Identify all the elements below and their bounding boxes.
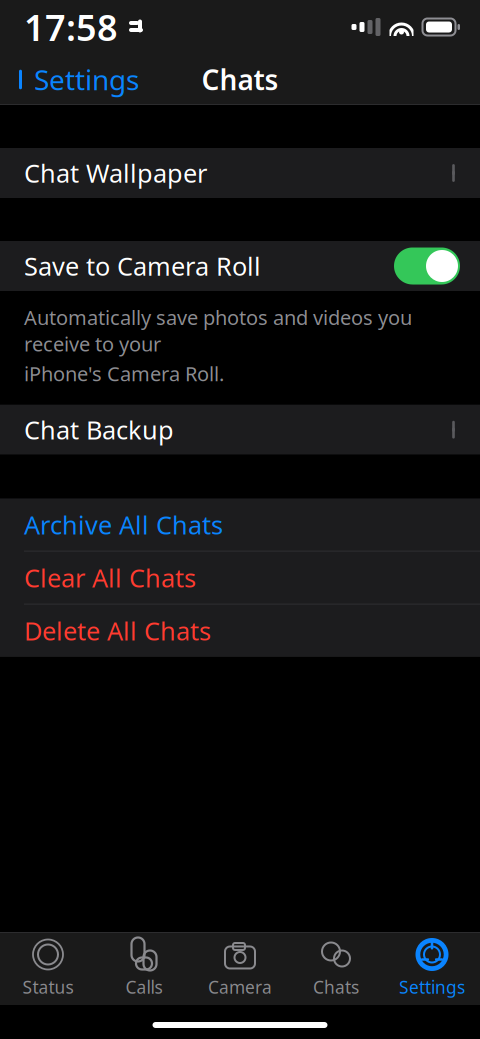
staticText: Camera — [208, 975, 272, 998]
staticText: Automatically save photos and videos you… — [24, 304, 412, 357]
staticText: iPhone's Camera Roll. — [24, 360, 224, 387]
button[interactable]: Chat Wallpaper — [0, 148, 480, 198]
staticText: Chats — [313, 975, 359, 998]
staticText: Calls — [125, 975, 162, 998]
staticText: Chats — [201, 61, 278, 98]
button[interactable]: Settings — [0, 52, 149, 107]
staticText: Chat Backup — [24, 413, 174, 446]
staticText: Settings — [399, 975, 465, 998]
button[interactable]: Chats — [288, 932, 384, 1005]
staticText: Save to Camera Roll — [24, 249, 261, 283]
staticText: 17:58 — [24, 3, 118, 51]
button[interactable]: Camera — [192, 932, 288, 1005]
button[interactable]: Delete All Chats — [0, 605, 480, 657]
staticText: Chat Wallpaper — [24, 156, 207, 190]
button[interactable]: Save to Camera Roll — [394, 247, 460, 284]
staticText: Archive All Chats — [24, 508, 223, 541]
button[interactable]: Chat Backup — [0, 405, 480, 455]
button[interactable]: Settings — [384, 932, 480, 1005]
button[interactable]: Calls — [96, 932, 192, 1005]
staticText: Settings — [34, 61, 139, 98]
button[interactable]: Status — [0, 932, 96, 1005]
staticText: Delete All Chats — [24, 614, 211, 647]
staticText: Status — [22, 975, 73, 998]
button[interactable]: Clear All Chats — [0, 552, 480, 604]
staticText: Clear All Chats — [24, 561, 196, 594]
button[interactable]: Archive All Chats — [0, 499, 480, 551]
